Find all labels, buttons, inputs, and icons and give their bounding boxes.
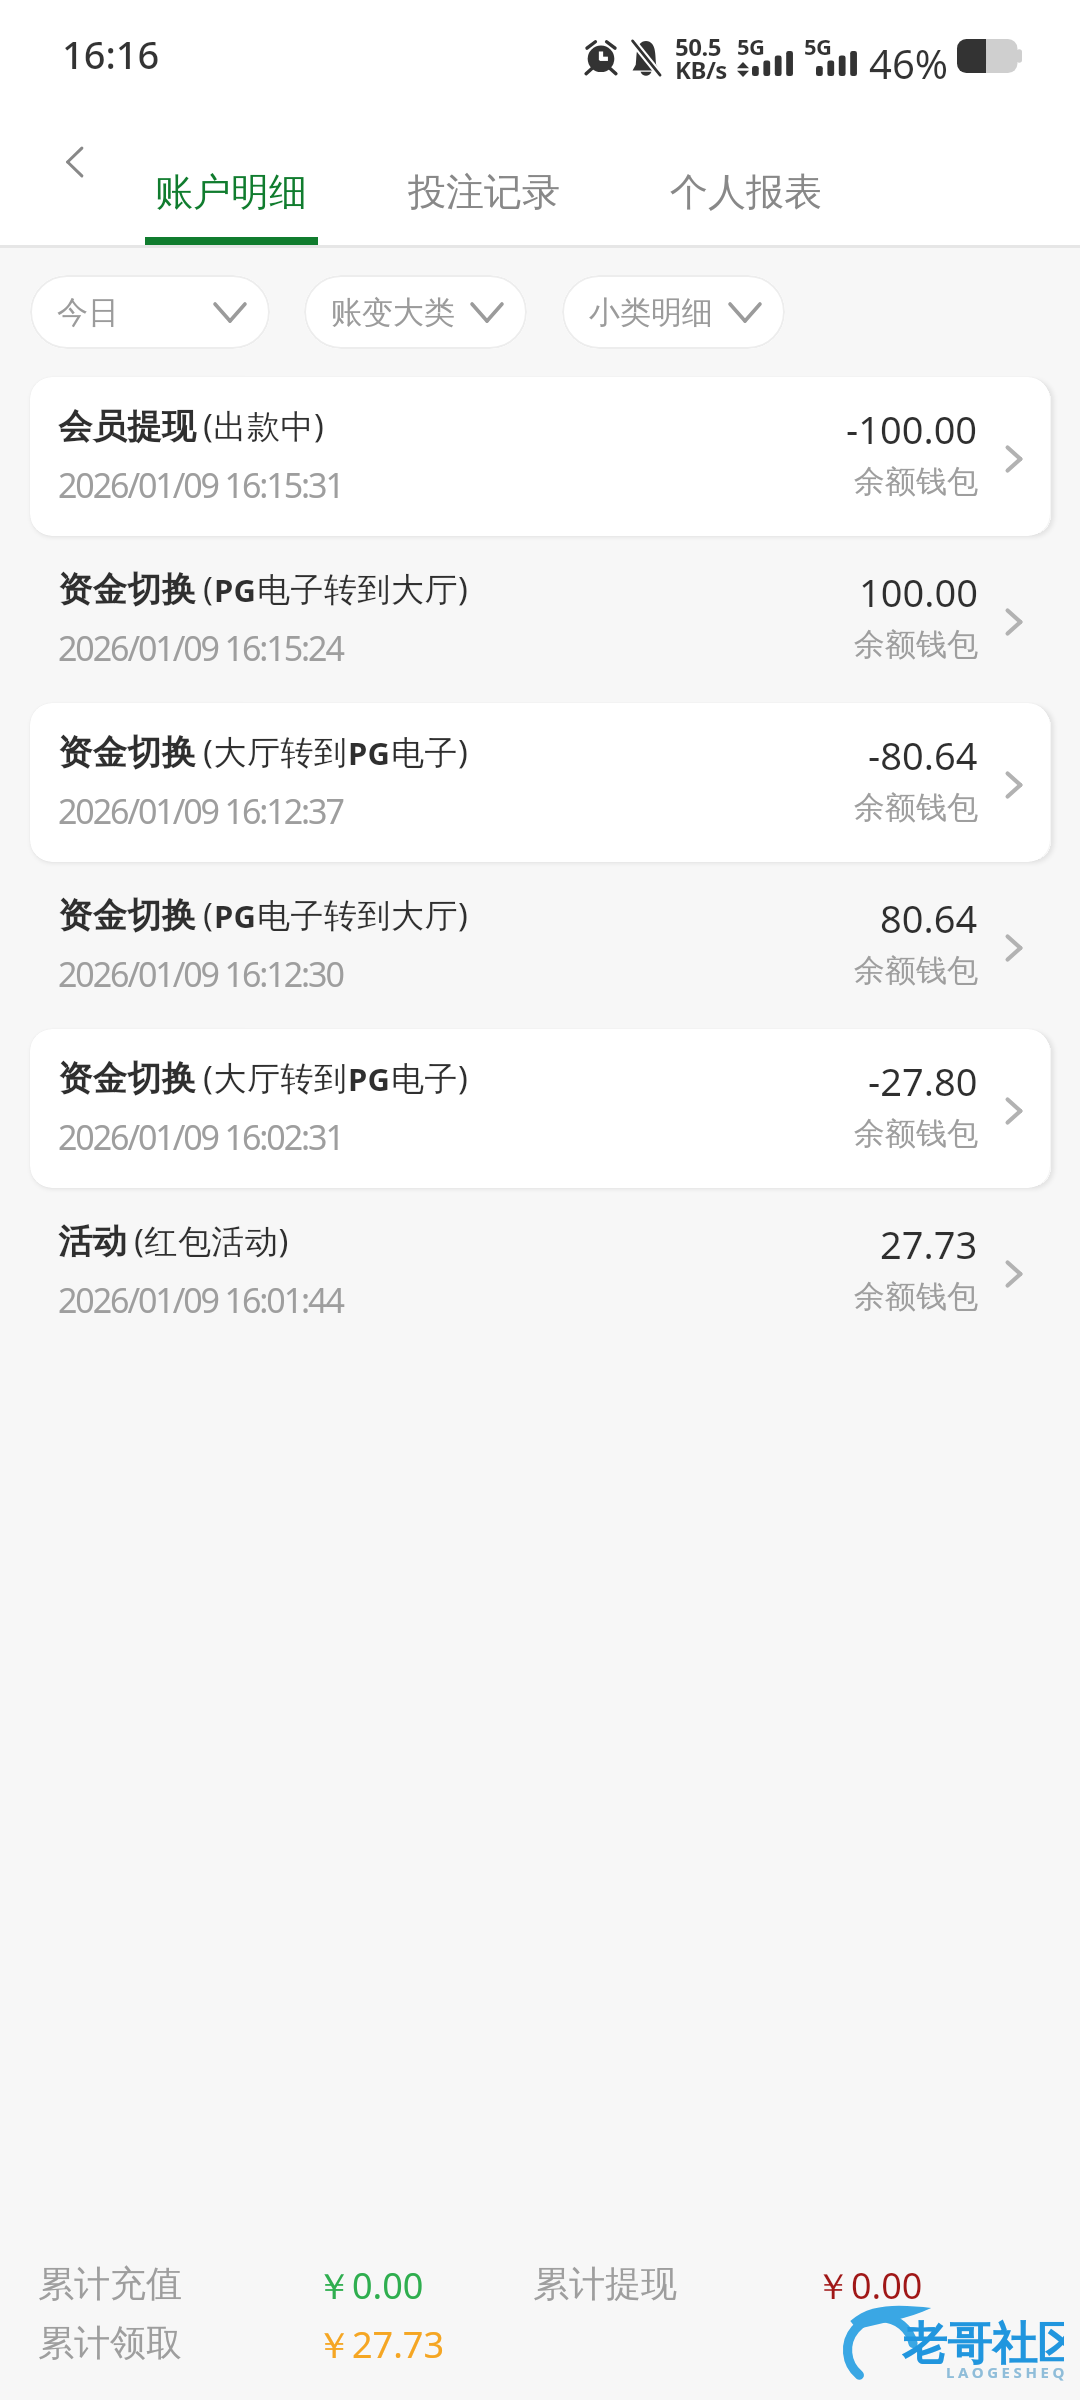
button[interactable]: Back [40, 126, 112, 198]
button[interactable]: 账户明细 [135, 108, 327, 245]
staticText: -80.64 [868, 729, 978, 781]
button[interactable]: 活动 [30, 1192, 1050, 1351]
staticText: 电子转到大厅) [257, 892, 469, 937]
button[interactable]: 个人报表 [650, 108, 842, 245]
button[interactable]: 资金切换 [30, 703, 1050, 862]
staticText: (大厅转到 [203, 1055, 348, 1100]
staticText: 50.5 [675, 30, 721, 63]
staticText: 2026/01/09 16:12:30 [58, 951, 343, 997]
button[interactable]: 账变大类 [304, 275, 527, 349]
staticText: 今日 [57, 293, 119, 332]
staticText: 老哥社区 [902, 2316, 1064, 2373]
staticText: KB/s [675, 53, 727, 86]
staticText: 2026/01/09 16:12:37 [58, 788, 343, 834]
button[interactable]: 小类明细 [562, 275, 785, 349]
staticText: 会员提现 [58, 405, 196, 448]
staticText: 余额钱包 [854, 788, 978, 827]
staticText: 100.00 [859, 566, 978, 618]
staticText: PG [348, 1058, 391, 1100]
staticText: 电子) [391, 729, 469, 774]
staticText: 累计领取 [38, 2320, 182, 2365]
staticText: 资金切换 [58, 1057, 196, 1100]
staticText: 2026/01/09 16:01:44 [58, 1277, 343, 1323]
staticText: 5G [804, 31, 832, 61]
staticText: 小类明细 [589, 293, 713, 332]
staticText: 2026/01/09 16:15:31 [58, 462, 343, 508]
staticText: 5G [737, 31, 765, 61]
staticText: 余额钱包 [854, 1277, 978, 1316]
staticText: 2026/01/09 16:02:31 [58, 1114, 343, 1160]
staticText: 账户明细 [155, 168, 307, 216]
staticText: 个人报表 [670, 168, 822, 216]
staticText: 余额钱包 [854, 625, 978, 664]
staticText: 累计提现 [533, 2261, 677, 2306]
staticText: 27.73 [880, 1218, 978, 1270]
button[interactable]: 资金切换 [30, 866, 1050, 1025]
staticText: PG [214, 569, 257, 611]
staticText: 电子) [391, 1055, 469, 1100]
staticText: 资金切换 [58, 568, 196, 611]
staticText: 账变大类 [331, 293, 455, 332]
staticText: 16:16 [62, 28, 160, 80]
staticText: ( [203, 892, 214, 937]
button[interactable]: 会员提现 [30, 377, 1050, 536]
staticText: LAOGESHEQU [946, 2362, 1064, 2382]
staticText: 2026/01/09 16:15:24 [58, 625, 343, 671]
staticText: (出款中) [203, 403, 325, 448]
staticText: 余额钱包 [854, 462, 978, 501]
button[interactable]: 投注记录 [388, 108, 580, 245]
staticText: 余额钱包 [854, 1114, 978, 1153]
staticText: -100.00 [846, 403, 978, 455]
staticText: -27.80 [868, 1055, 978, 1107]
staticText: PG [348, 732, 391, 774]
staticText: ￥27.73 [316, 2320, 445, 2369]
staticText: 46% [869, 36, 948, 90]
staticText: ￥0.00 [316, 2261, 424, 2310]
staticText: 投注记录 [408, 168, 560, 216]
staticText: 资金切换 [58, 894, 196, 937]
staticText: 余额钱包 [854, 951, 978, 990]
staticText: ( [203, 566, 214, 611]
button[interactable]: 资金切换 [30, 1029, 1050, 1188]
staticText: (红包活动) [134, 1218, 289, 1263]
staticText: (大厅转到 [203, 729, 348, 774]
staticText: 累计充值 [38, 2261, 182, 2306]
button[interactable]: 资金切换 [30, 540, 1050, 699]
staticText: 电子转到大厅) [257, 566, 469, 611]
button[interactable]: 今日 [30, 275, 270, 349]
staticText: 80.64 [880, 892, 978, 944]
staticText: 活动 [58, 1220, 127, 1263]
staticText: 资金切换 [58, 731, 196, 774]
staticText: PG [214, 895, 257, 937]
staticText: ￥0.00 [815, 2261, 923, 2310]
